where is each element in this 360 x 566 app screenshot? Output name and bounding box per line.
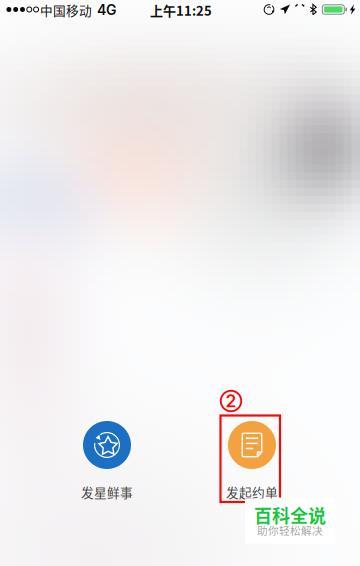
staticText: 百科全说	[254, 502, 326, 528]
staticText: 发星鲜事	[81, 483, 133, 501]
staticText: 中国移动	[40, 1, 92, 19]
staticText: 发起约单	[226, 483, 278, 501]
staticText: 4G	[97, 1, 116, 18]
staticText: 2	[225, 390, 236, 411]
staticText: 上午11:25	[150, 0, 212, 19]
staticText: 助你轻松解决	[257, 522, 323, 538]
button[interactable]: 发星鲜事	[0, 0, 360, 566]
button[interactable]: 发起约单	[0, 0, 360, 566]
